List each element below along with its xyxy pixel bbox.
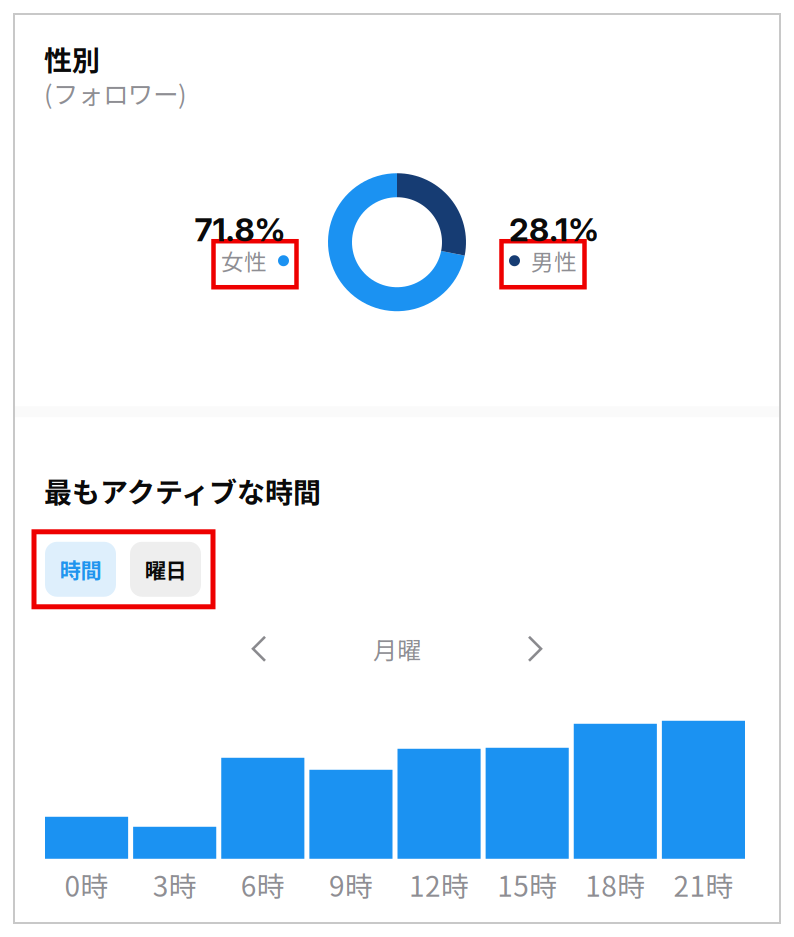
staticText: 15時 <box>497 864 557 905</box>
button[interactable]: Previous day <box>239 627 279 671</box>
staticText: 9時 <box>329 864 373 905</box>
staticText: 女性 <box>221 244 267 277</box>
staticText: 28.1% <box>509 210 599 249</box>
staticText: 曜日 <box>144 554 186 585</box>
staticText: 0時 <box>65 864 109 905</box>
staticText: 最もアクティブな時間 <box>44 470 321 511</box>
staticText: 男性 <box>531 244 577 277</box>
staticText: 6時 <box>241 864 285 905</box>
staticText: 18時 <box>585 864 645 905</box>
staticText: 時間 <box>59 554 101 585</box>
staticText: 71.8% <box>194 210 285 249</box>
staticText: 21時 <box>673 864 733 905</box>
button[interactable]: 時間 <box>45 542 116 597</box>
button[interactable]: 曜日 <box>130 542 201 597</box>
button[interactable]: Next day <box>515 627 555 671</box>
staticText: 3時 <box>153 864 197 905</box>
staticText: 性別 <box>44 38 100 78</box>
staticText: (フォロワー) <box>44 74 187 111</box>
staticText: 12時 <box>409 864 469 905</box>
staticText: 月曜 <box>373 631 421 666</box>
